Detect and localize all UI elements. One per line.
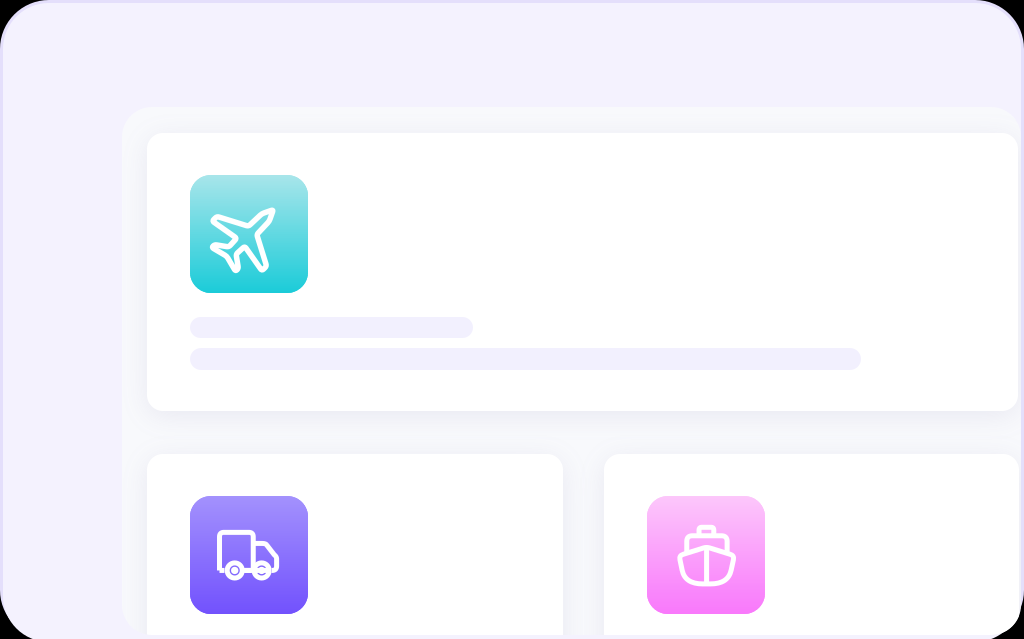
button[interactable]: Air freight shipment xyxy=(147,133,1018,411)
button[interactable]: Sea freight shipment xyxy=(604,454,1019,639)
button[interactable]: Road freight shipment xyxy=(147,454,563,639)
